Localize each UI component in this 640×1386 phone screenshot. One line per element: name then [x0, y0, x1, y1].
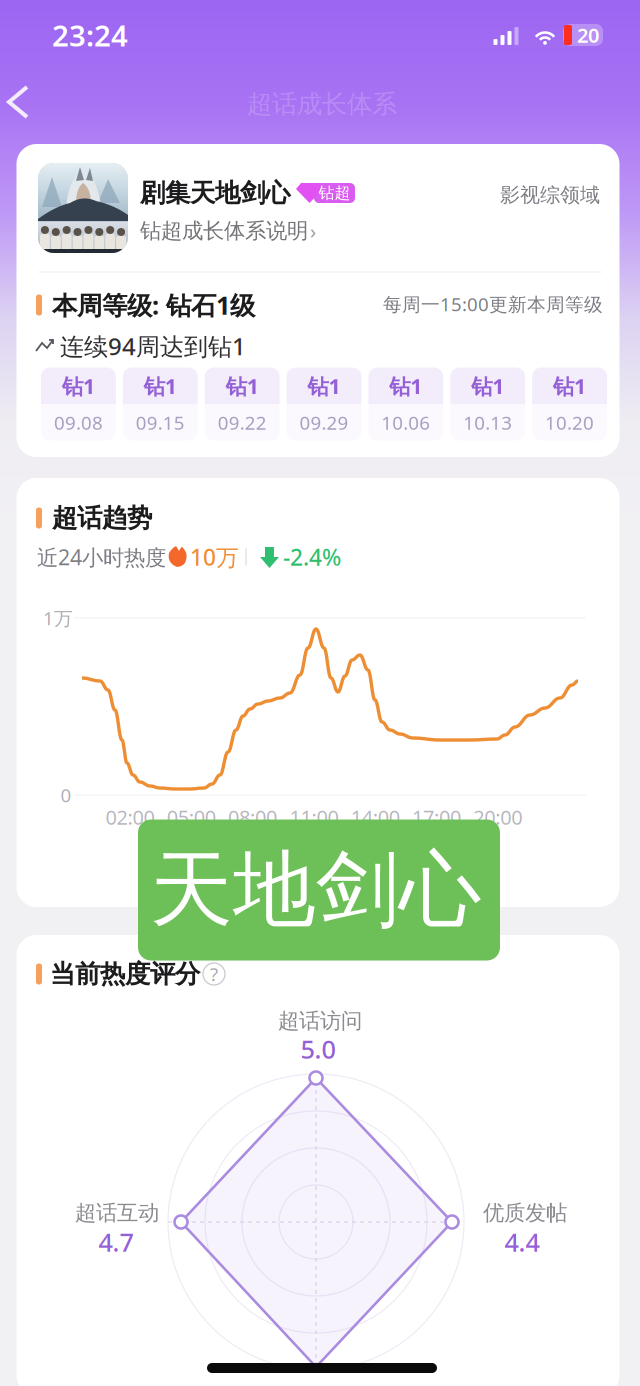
staticText: 连续94周达到钻1 — [60, 330, 246, 362]
staticText: 钻1 — [62, 372, 95, 400]
staticText: 02:00 — [105, 804, 154, 830]
staticText: 每周一15:00更新本周等级 — [383, 292, 603, 316]
staticText: 超话互动 — [75, 1200, 159, 1226]
staticText: 17:00 — [412, 804, 461, 830]
staticText: 09.08 — [54, 410, 103, 435]
staticText: 08:00 — [228, 804, 277, 830]
staticText: 当前热度评分 — [50, 958, 200, 989]
staticText: 05:00 — [167, 804, 216, 830]
staticText: 10.20 — [545, 410, 594, 435]
staticText: 09.29 — [299, 410, 348, 435]
staticText: 钻1 — [389, 372, 422, 400]
staticText: 4.7 — [98, 1225, 133, 1259]
staticText: 钻1 — [553, 372, 586, 400]
staticText: 4.4 — [504, 1225, 539, 1259]
staticText: 钻超成长体系说明 — [140, 218, 308, 244]
staticText: 近24小时热度 — [37, 543, 166, 571]
staticText: 剧集天地剑心 — [140, 177, 290, 208]
button[interactable]: 返回 — [0, 81, 54, 123]
staticText: 14:00 — [351, 804, 400, 830]
staticText: -2.4% — [283, 542, 341, 572]
staticText: 20 — [577, 22, 599, 48]
staticText: 11:00 — [289, 804, 338, 830]
staticText: 影视综领域 — [500, 183, 600, 207]
staticText: 钻1 — [471, 372, 504, 400]
staticText: 09.22 — [218, 410, 267, 435]
staticText: 钻1 — [144, 372, 177, 400]
staticText: 09.15 — [136, 410, 185, 435]
button[interactable]: 钻超成长体系说明 — [140, 213, 340, 249]
staticText: 10.06 — [381, 410, 430, 435]
button[interactable]: 剧集天地剑心 超话头像 — [38, 163, 128, 253]
staticText: 本周等级: 钻石1级 — [52, 288, 255, 322]
staticText: 1万 — [43, 606, 73, 630]
staticText: 10.13 — [463, 410, 512, 435]
staticText: 超话访问 — [278, 1008, 362, 1034]
staticText: 23:24 — [52, 15, 128, 54]
staticText: 钻1 — [307, 372, 340, 400]
staticText: 超话成长体系 — [247, 88, 397, 119]
staticText: › — [310, 218, 316, 244]
staticText: 钻超 — [318, 183, 350, 203]
staticText: 超话趋势 — [52, 502, 152, 533]
staticText: 0 — [60, 783, 71, 807]
staticText: 天地剑心 — [150, 839, 482, 941]
staticText: 钻1 — [226, 372, 259, 400]
staticText: 5.0 — [300, 1032, 335, 1066]
staticText: 10万 — [190, 542, 239, 572]
staticText: 20:00 — [473, 804, 522, 830]
staticText: 优质发帖 — [483, 1200, 567, 1226]
staticText: ? — [210, 962, 218, 986]
button[interactable]: Help — [203, 963, 225, 985]
